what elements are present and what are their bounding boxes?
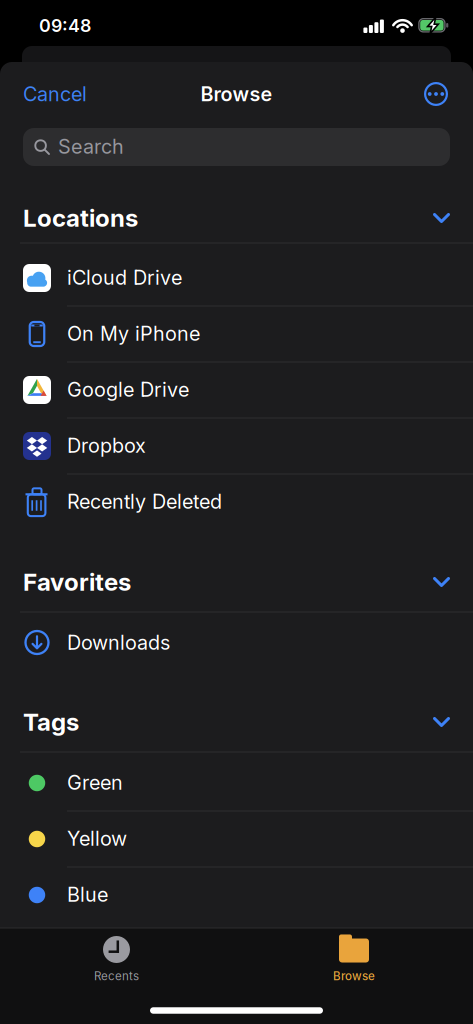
button[interactable]: Recents — [56, 928, 176, 988]
button[interactable]: Recently Deleted — [0, 474, 473, 530]
button[interactable]: Cancel — [23, 82, 113, 106]
button[interactable]: Yellow — [0, 811, 473, 867]
button[interactable]: Dropbox — [0, 418, 473, 474]
staticText: 09:48 — [39, 15, 91, 36]
staticText: Cancel — [23, 82, 87, 106]
staticText: Yellow — [67, 826, 127, 850]
staticText: Dropbox — [67, 433, 146, 457]
staticText: Green — [67, 770, 123, 794]
staticText: Recently Deleted — [67, 489, 222, 513]
staticText: On My iPhone — [67, 321, 200, 345]
staticText: Tags — [23, 707, 79, 737]
staticText: Favorites — [23, 567, 131, 597]
staticText: Recents — [94, 969, 139, 983]
button[interactable]: Locations — [0, 196, 473, 240]
staticText: Locations — [23, 203, 138, 233]
button[interactable]: Blue — [0, 867, 473, 923]
button[interactable]: Favorites — [0, 560, 473, 604]
button[interactable]: Browse — [294, 928, 414, 988]
button[interactable]: iCloud Drive — [0, 250, 473, 306]
button[interactable]: On My iPhone — [0, 306, 473, 362]
button[interactable]: Search — [23, 128, 450, 166]
staticText: Browse — [333, 969, 375, 983]
staticText: Google Drive — [67, 377, 189, 401]
staticText: Blue — [67, 882, 108, 906]
staticText: Browse — [200, 82, 272, 106]
staticText: Downloads — [67, 630, 170, 654]
button[interactable]: Downloads — [0, 615, 473, 671]
staticText: Search — [58, 135, 124, 159]
staticText: iCloud Drive — [67, 265, 182, 289]
button[interactable]: Tags — [0, 700, 473, 744]
button[interactable]: More — [423, 81, 449, 107]
button[interactable]: Green — [0, 755, 473, 811]
button[interactable]: Google Drive — [0, 362, 473, 418]
